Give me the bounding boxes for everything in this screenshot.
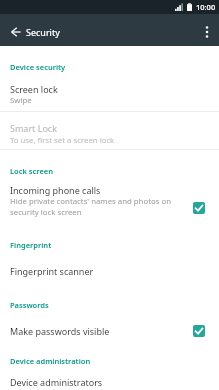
button[interactable]: Make passwords visible (0, 325, 219, 337)
button[interactable]: Incoming phone calls (0, 184, 219, 218)
staticText: Hide private contacts' names and photos … (10, 196, 189, 218)
staticText: Device administration (10, 356, 91, 366)
staticText: Incoming phone calls (10, 184, 101, 196)
button[interactable] (193, 325, 205, 337)
staticText: Screen lock (10, 83, 58, 95)
staticText: Security (26, 26, 60, 38)
button[interactable]: Fingerprint scanner (0, 265, 219, 277)
staticText: Device administrators (10, 376, 103, 388)
staticText: 10:00 (196, 2, 216, 12)
staticText: Device security (10, 62, 66, 72)
staticText: Passwords (10, 300, 49, 310)
button[interactable] (9, 25, 23, 39)
button[interactable] (198, 23, 216, 41)
button[interactable]: Device administrators (0, 376, 219, 388)
staticText: Smart Lock (10, 122, 57, 134)
staticText: Lock screen (10, 166, 53, 176)
staticText: Swipe (10, 95, 32, 106)
staticText: Fingerprint scanner (10, 265, 94, 277)
button[interactable] (193, 202, 205, 214)
button[interactable]: Screen lock (0, 83, 219, 106)
button[interactable]: Smart Lock (0, 122, 219, 146)
staticText: Fingerprint (10, 240, 52, 250)
staticText: To use, first set a screen lock (10, 135, 115, 146)
staticText: Make passwords visible (10, 325, 193, 337)
